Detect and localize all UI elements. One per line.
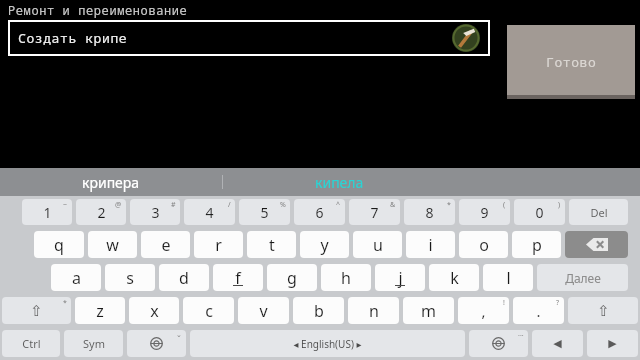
button[interactable]: 3 [130,199,180,225]
button[interactable]: y [300,231,349,258]
staticText: z [96,300,104,322]
button[interactable]: r [194,231,243,258]
staticText: крипера [82,173,140,192]
staticText: Создать крипе [18,29,128,47]
staticText: s [126,267,134,289]
staticText: 1 [43,203,52,222]
button[interactable]: p [512,231,561,258]
staticText: ( [503,200,506,210]
button[interactable]: o [459,231,508,258]
staticText: * [447,200,451,210]
staticText: # [171,200,176,210]
button[interactable]: Далее [537,264,628,291]
button[interactable]: h [321,264,371,291]
button[interactable]: s [105,264,155,291]
button[interactable]: b [293,297,344,324]
staticText: Del [590,205,608,220]
staticText: Sym [83,336,105,351]
staticText: , [481,301,486,321]
button[interactable]: Cursor right [587,330,638,357]
staticText: a [72,267,81,289]
staticText: g [287,267,297,289]
button[interactable]: e [141,231,190,258]
staticText: o [479,234,489,256]
button[interactable]: 7 [349,199,400,225]
staticText: Готово [546,53,597,71]
button[interactable]: q [34,231,84,258]
button[interactable]: 1 [22,199,72,225]
staticText: d [179,267,189,289]
staticText: ◀ [553,337,562,350]
button[interactable]: Backspace [565,231,628,258]
staticText: v [259,300,268,322]
staticText: e [161,234,171,256]
button[interactable]: z [75,297,125,324]
button[interactable]: Cursor left [532,330,583,357]
staticText: i [428,234,433,256]
staticText: * [63,298,67,308]
button[interactable]: крипера [0,168,222,196]
staticText: 6 [315,203,324,222]
button[interactable]: l [483,264,533,291]
staticText: l [506,267,511,289]
staticText: & [390,200,396,210]
staticText: % [280,200,286,210]
button[interactable]: a [51,264,101,291]
button[interactable]: x [129,297,179,324]
button[interactable]: f [213,264,263,291]
button[interactable]: Shift [568,297,638,324]
button[interactable]: . [513,297,564,324]
staticText: ^ [336,200,341,210]
button[interactable]: Готово [507,25,635,99]
staticText: f [235,267,241,289]
staticText: 7 [370,203,379,222]
staticText: ··· [518,331,524,341]
staticText: ▶ [608,337,617,350]
button[interactable]: Sym [64,330,123,357]
button[interactable]: i [406,231,455,258]
button[interactable]: w [88,231,137,258]
staticText: u [373,234,383,256]
button[interactable]: v [238,297,289,324]
button[interactable]: Change keyboard [127,330,186,357]
button[interactable]: j [375,264,425,291]
staticText: 0 [535,203,544,222]
staticText: 5 [260,203,269,222]
staticText: 3 [151,203,160,222]
button[interactable]: Shift [2,297,71,324]
button[interactable]: d [159,264,209,291]
button[interactable]: Создать крипе [8,20,490,56]
button[interactable]: m [403,297,454,324]
staticText: Далее [565,270,601,286]
button[interactable]: Del [569,199,628,225]
staticText: Ctrl [22,336,41,351]
button[interactable]: 0 [514,199,565,225]
staticText: j [398,267,403,289]
button[interactable]: кипела [223,168,455,196]
staticText: кипела [315,173,364,192]
button[interactable]: ◂ English(US) ▸ [190,330,465,357]
staticText: ⌄ [176,331,182,339]
staticText: ) [558,200,561,210]
button[interactable]: k [429,264,479,291]
button[interactable]: u [353,231,402,258]
staticText: c [205,300,213,322]
staticText: 8 [425,203,434,222]
staticText: r [215,234,222,256]
staticText: p [532,234,542,256]
button[interactable]: 5 [239,199,290,225]
staticText: m [421,300,436,322]
button[interactable]: 6 [294,199,345,225]
button[interactable]: Ctrl [2,330,60,357]
button[interactable]: c [183,297,234,324]
button[interactable]: g [267,264,317,291]
button[interactable]: t [247,231,296,258]
button[interactable]: n [348,297,399,324]
button[interactable]: , [458,297,509,324]
button[interactable]: 8 [404,199,455,225]
button[interactable]: 2 [76,199,126,225]
staticText: ⇧ [30,302,43,319]
button[interactable]: 9 [459,199,510,225]
button[interactable]: 4 [184,199,235,225]
button[interactable]: Emoji [469,330,528,357]
